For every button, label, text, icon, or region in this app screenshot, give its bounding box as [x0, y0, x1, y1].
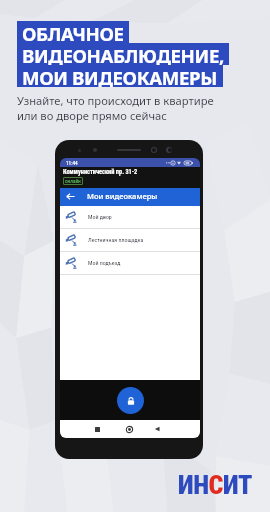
staticText: Мой двор — [88, 214, 112, 221]
staticText: Узнайте, что происходит в квартире или в… — [17, 93, 214, 123]
button[interactable]: Назад — [60, 187, 80, 205]
staticText: ОБЛАЧНОЕ — [22, 21, 124, 43]
button[interactable]: Мой двор — [60, 206, 200, 229]
button[interactable]: Лестничная площадка — [60, 229, 200, 252]
staticText: Мои видеокамеры — [87, 191, 158, 201]
staticText: 11:44 — [66, 160, 78, 166]
staticText: ВИДЕОНАБЛЮДЕНИЕ, — [22, 43, 224, 65]
staticText: онлайн — [65, 178, 81, 184]
button[interactable]: Мой подъезд — [60, 252, 200, 275]
staticText: ИНСИТ — [178, 470, 252, 500]
staticText: МОИ ВИДЕОКАМЕРЫ — [22, 65, 218, 87]
button[interactable]: Заблокировать — [117, 387, 144, 414]
button[interactable]: Домой — [126, 426, 133, 433]
button[interactable]: Недавние — [95, 427, 100, 432]
staticText: Мой подъезд — [88, 260, 121, 267]
staticText: Лестничная площадка — [88, 237, 144, 244]
button[interactable]: Назад — [154, 426, 160, 432]
staticText: Коммунистический пр. 31-2 — [63, 168, 138, 175]
